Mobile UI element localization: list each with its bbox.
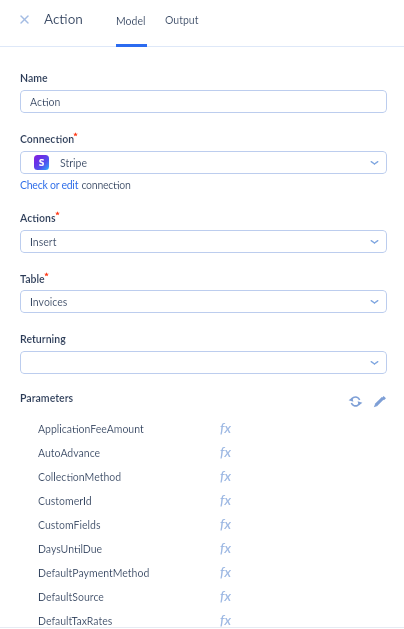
button[interactable]: Check or edit — [20, 179, 79, 192]
staticText: Action — [44, 11, 83, 27]
button[interactable]: DaysUntilDue — [0, 537, 404, 561]
button[interactable]: CollectionMethod — [0, 465, 404, 489]
staticText: Table — [20, 273, 45, 286]
button[interactable]: Invoices — [20, 290, 387, 313]
staticText: Parameters — [20, 392, 74, 405]
staticText: CustomFields — [38, 519, 101, 532]
staticText: AutoAdvance — [38, 447, 101, 460]
button[interactable]: Refresh — [345, 391, 365, 411]
button[interactable]: Insert — [20, 230, 387, 253]
button[interactable]: ApplicationFeeAmount — [0, 417, 404, 441]
staticText: fx — [220, 611, 231, 628]
button[interactable]: CustomFields — [0, 513, 404, 537]
staticText: fx — [220, 539, 231, 556]
staticText: DefaultTaxRates — [38, 615, 113, 628]
button[interactable]: AutoAdvance — [0, 441, 404, 465]
button[interactable] — [20, 351, 387, 374]
staticText: Stripe — [60, 157, 87, 170]
staticText: fx — [220, 515, 231, 532]
staticText: ApplicationFeeAmount — [38, 423, 144, 436]
staticText: fx — [220, 467, 231, 484]
button[interactable]: S — [20, 151, 387, 174]
staticText: Model — [116, 15, 146, 28]
button[interactable]: CustomerId — [0, 489, 404, 513]
staticText: Name — [20, 72, 48, 85]
staticText: S — [39, 157, 45, 168]
staticText: Actions — [20, 212, 56, 225]
staticText: CollectionMethod — [38, 471, 122, 484]
staticText: DefaultPaymentMethod — [38, 567, 150, 580]
staticText: fx — [220, 587, 231, 604]
staticText: fx — [220, 563, 231, 580]
staticText: Returning — [20, 333, 66, 346]
staticText: Insert — [30, 236, 57, 249]
staticText: CustomerId — [38, 495, 92, 508]
staticText: connection — [79, 179, 131, 192]
staticText: DaysUntilDue — [38, 543, 103, 556]
staticText: Output — [165, 14, 199, 27]
staticText: DefaultSource — [38, 591, 104, 604]
button[interactable]: Edit — [369, 391, 389, 411]
staticText: fx — [220, 419, 231, 436]
button[interactable]: DefaultSource — [0, 585, 404, 609]
staticText: fx — [220, 491, 231, 508]
button[interactable]: Close — [15, 10, 33, 28]
staticText: Action — [30, 96, 61, 109]
button[interactable]: DefaultPaymentMethod — [0, 561, 404, 585]
button[interactable]: Action — [20, 90, 387, 113]
staticText: Connection — [20, 133, 75, 146]
button[interactable]: DefaultTaxRates — [0, 609, 404, 629]
button[interactable]: Output — [161, 0, 203, 40]
button[interactable]: Model — [110, 1, 152, 41]
staticText: fx — [220, 443, 231, 460]
staticText: Invoices — [30, 296, 68, 309]
